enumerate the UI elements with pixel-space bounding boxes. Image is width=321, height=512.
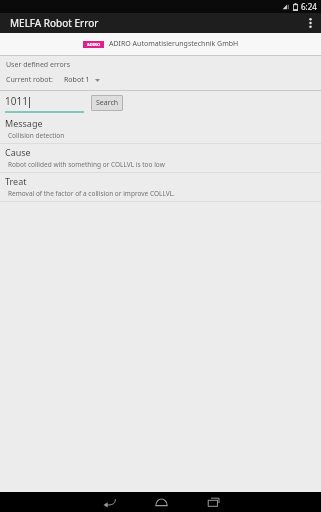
button[interactable]: Home	[135, 492, 187, 512]
staticText: Treat	[5, 175, 27, 187]
staticText: Search	[96, 98, 119, 108]
button[interactable]: More options	[299, 13, 321, 33]
button[interactable]: Robot 1	[62, 74, 102, 86]
staticText: Robot collided with something or COLLVL …	[8, 160, 165, 169]
staticText: Collision detection	[8, 131, 65, 140]
staticText: 6:24	[301, 1, 317, 12]
staticText: 1011	[5, 94, 28, 108]
button[interactable]: Back	[83, 492, 135, 512]
staticText: Cause	[5, 146, 31, 158]
staticText: Removal of the factor of a collision or …	[8, 189, 175, 198]
button[interactable]: Message	[0, 115, 321, 143]
staticText: User defined errors	[6, 60, 71, 70]
staticText: ADIRO Automatisierungstechnik GmbH	[109, 39, 239, 49]
button[interactable]: Recent apps	[187, 492, 239, 512]
staticText: ADIRO	[87, 42, 101, 47]
staticText: Robot 1	[64, 75, 90, 85]
button[interactable]: Cause	[0, 144, 321, 172]
button[interactable]: 1011	[5, 94, 84, 113]
button[interactable]: Search	[91, 95, 123, 111]
button[interactable]: Treat	[0, 173, 321, 201]
staticText: MELFA Robot Error	[10, 16, 99, 30]
staticText: Message	[5, 117, 43, 129]
staticText: Current robot:	[6, 75, 53, 85]
